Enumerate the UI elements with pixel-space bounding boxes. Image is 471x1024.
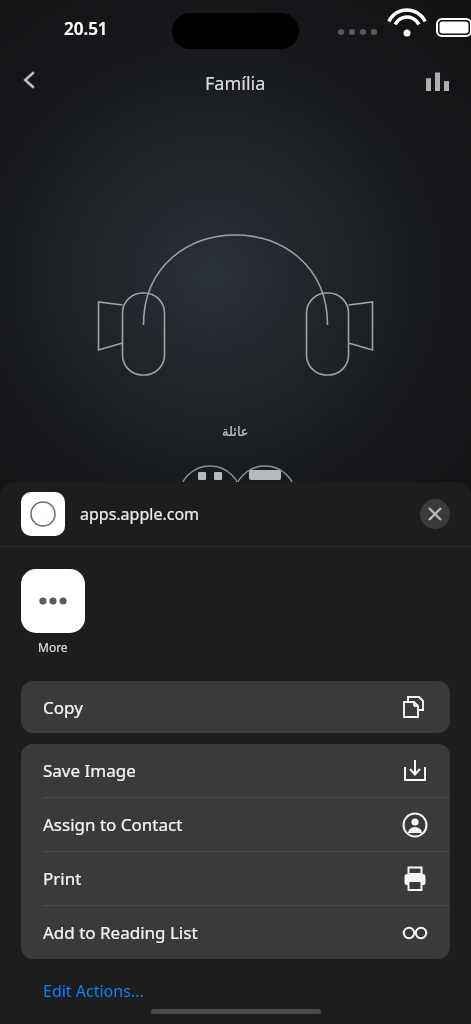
staticText: Assign to Contact	[43, 813, 183, 836]
button[interactable]: Statistics	[411, 56, 459, 104]
button[interactable]: Assign to Contact	[21, 798, 450, 851]
staticText: 20.51	[64, 17, 108, 40]
button[interactable]: Close	[420, 499, 450, 529]
staticText: Save Image	[43, 759, 136, 782]
button[interactable]: Add to Reading List	[21, 906, 450, 959]
staticText: Edit Actions...	[43, 980, 144, 1002]
button[interactable]: Back	[6, 56, 54, 104]
staticText: apps.apple.com	[80, 503, 200, 525]
staticText: Print	[43, 867, 82, 890]
button[interactable]: Print	[21, 852, 450, 905]
button[interactable]: Save Image	[21, 744, 450, 797]
staticText: عائلة	[222, 424, 249, 439]
staticText: Copy	[43, 696, 83, 719]
staticText: Família	[205, 71, 266, 96]
staticText: More	[38, 639, 68, 655]
button[interactable]: Copy	[21, 681, 450, 733]
button[interactable]: Edit Actions...	[0, 973, 471, 1009]
staticText: Add to Reading List	[43, 921, 198, 944]
button[interactable]	[21, 569, 85, 633]
